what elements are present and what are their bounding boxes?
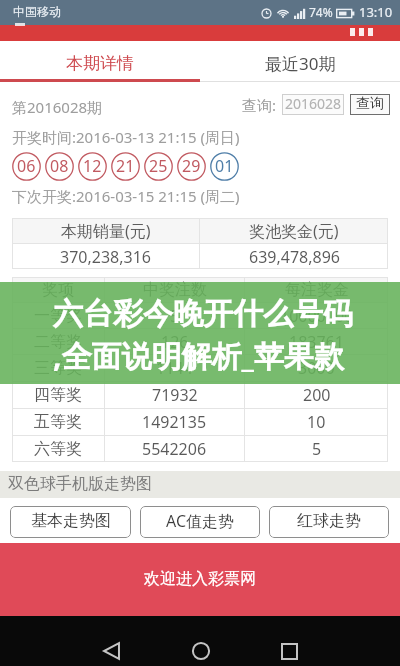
staticText: 06 xyxy=(17,155,36,177)
staticText: 欢迎进入彩票网 xyxy=(144,569,256,589)
staticText: 639,478,896 xyxy=(249,246,340,268)
staticText: 10 xyxy=(307,411,326,433)
staticText: 奖池奖金(元) xyxy=(249,220,339,242)
staticText: 本期销量(元) xyxy=(61,220,151,242)
staticText: 双色球手机版走势图 xyxy=(8,474,152,494)
staticText: 71932 xyxy=(152,384,198,406)
staticText: 13:10 xyxy=(359,3,393,21)
staticText: 查询: xyxy=(242,95,277,115)
staticText: 中奖注数 xyxy=(143,280,207,300)
staticText: 第2016028期 xyxy=(12,97,103,117)
staticText: 红球走势 xyxy=(297,511,361,531)
staticText: 01 xyxy=(215,155,234,177)
staticText: AC值走势 xyxy=(166,510,235,532)
staticText: 370,238,316 xyxy=(60,246,151,268)
staticText: 三等奖 xyxy=(34,358,82,378)
staticText: 下次开奖:2016-03-15 21:15 (周二) xyxy=(12,186,240,206)
button[interactable]: Recent apps xyxy=(269,631,309,666)
staticText: ,全面说明解析_苹果款 xyxy=(53,335,344,376)
staticText: 21 xyxy=(116,155,135,177)
button[interactable]: 本期详情 xyxy=(0,41,200,82)
staticText: 5 xyxy=(170,305,180,327)
staticText: 08 xyxy=(50,155,69,177)
staticText: 1144 xyxy=(156,357,193,379)
staticText: 25 xyxy=(149,155,168,177)
staticText: 二等奖 xyxy=(34,332,82,352)
staticText: 3000 xyxy=(298,357,335,379)
staticText: 最近30期 xyxy=(265,52,336,75)
staticText: 126 xyxy=(161,331,189,353)
button[interactable]: 最近30期 xyxy=(200,41,400,82)
staticText: 2016028 xyxy=(285,94,342,113)
staticText: 一等奖 xyxy=(34,306,82,326)
staticText: 29 xyxy=(182,155,201,177)
staticText: 基本走势图 xyxy=(31,511,111,531)
staticText: 200 xyxy=(303,384,331,406)
staticText: 1492135 xyxy=(142,411,207,433)
staticText: 183761 xyxy=(289,331,344,353)
button[interactable]: Home xyxy=(181,631,221,666)
staticText: 74% xyxy=(309,4,333,20)
staticText: 5 xyxy=(312,438,322,460)
staticText: 五等奖 xyxy=(34,412,82,432)
staticText: 六等奖 xyxy=(34,439,82,459)
staticText: 查询 xyxy=(356,95,384,113)
button[interactable]: 基本走势图 xyxy=(10,506,131,538)
staticText: 开奖时间:2016-03-13 21:15 (周日) xyxy=(12,127,240,147)
button[interactable]: 红球走势 xyxy=(269,506,389,538)
staticText: 每注奖金 xyxy=(285,280,349,300)
staticText: 10000000 xyxy=(280,305,354,327)
staticText: 六台彩今晚开什么号码 xyxy=(53,295,353,333)
button[interactable]: 欢迎进入彩票网 xyxy=(0,543,400,616)
staticText: 中国移动 xyxy=(13,4,61,19)
staticText: 本期详情 xyxy=(66,53,134,74)
button[interactable]: 查询 xyxy=(350,94,390,115)
button[interactable]: Back xyxy=(91,631,131,666)
staticText: 奖项 xyxy=(42,280,74,300)
staticText: 四等奖 xyxy=(34,385,82,405)
button[interactable]: AC值走势 xyxy=(140,506,260,538)
staticText: 12 xyxy=(83,155,102,177)
staticText: 5542206 xyxy=(142,438,207,460)
